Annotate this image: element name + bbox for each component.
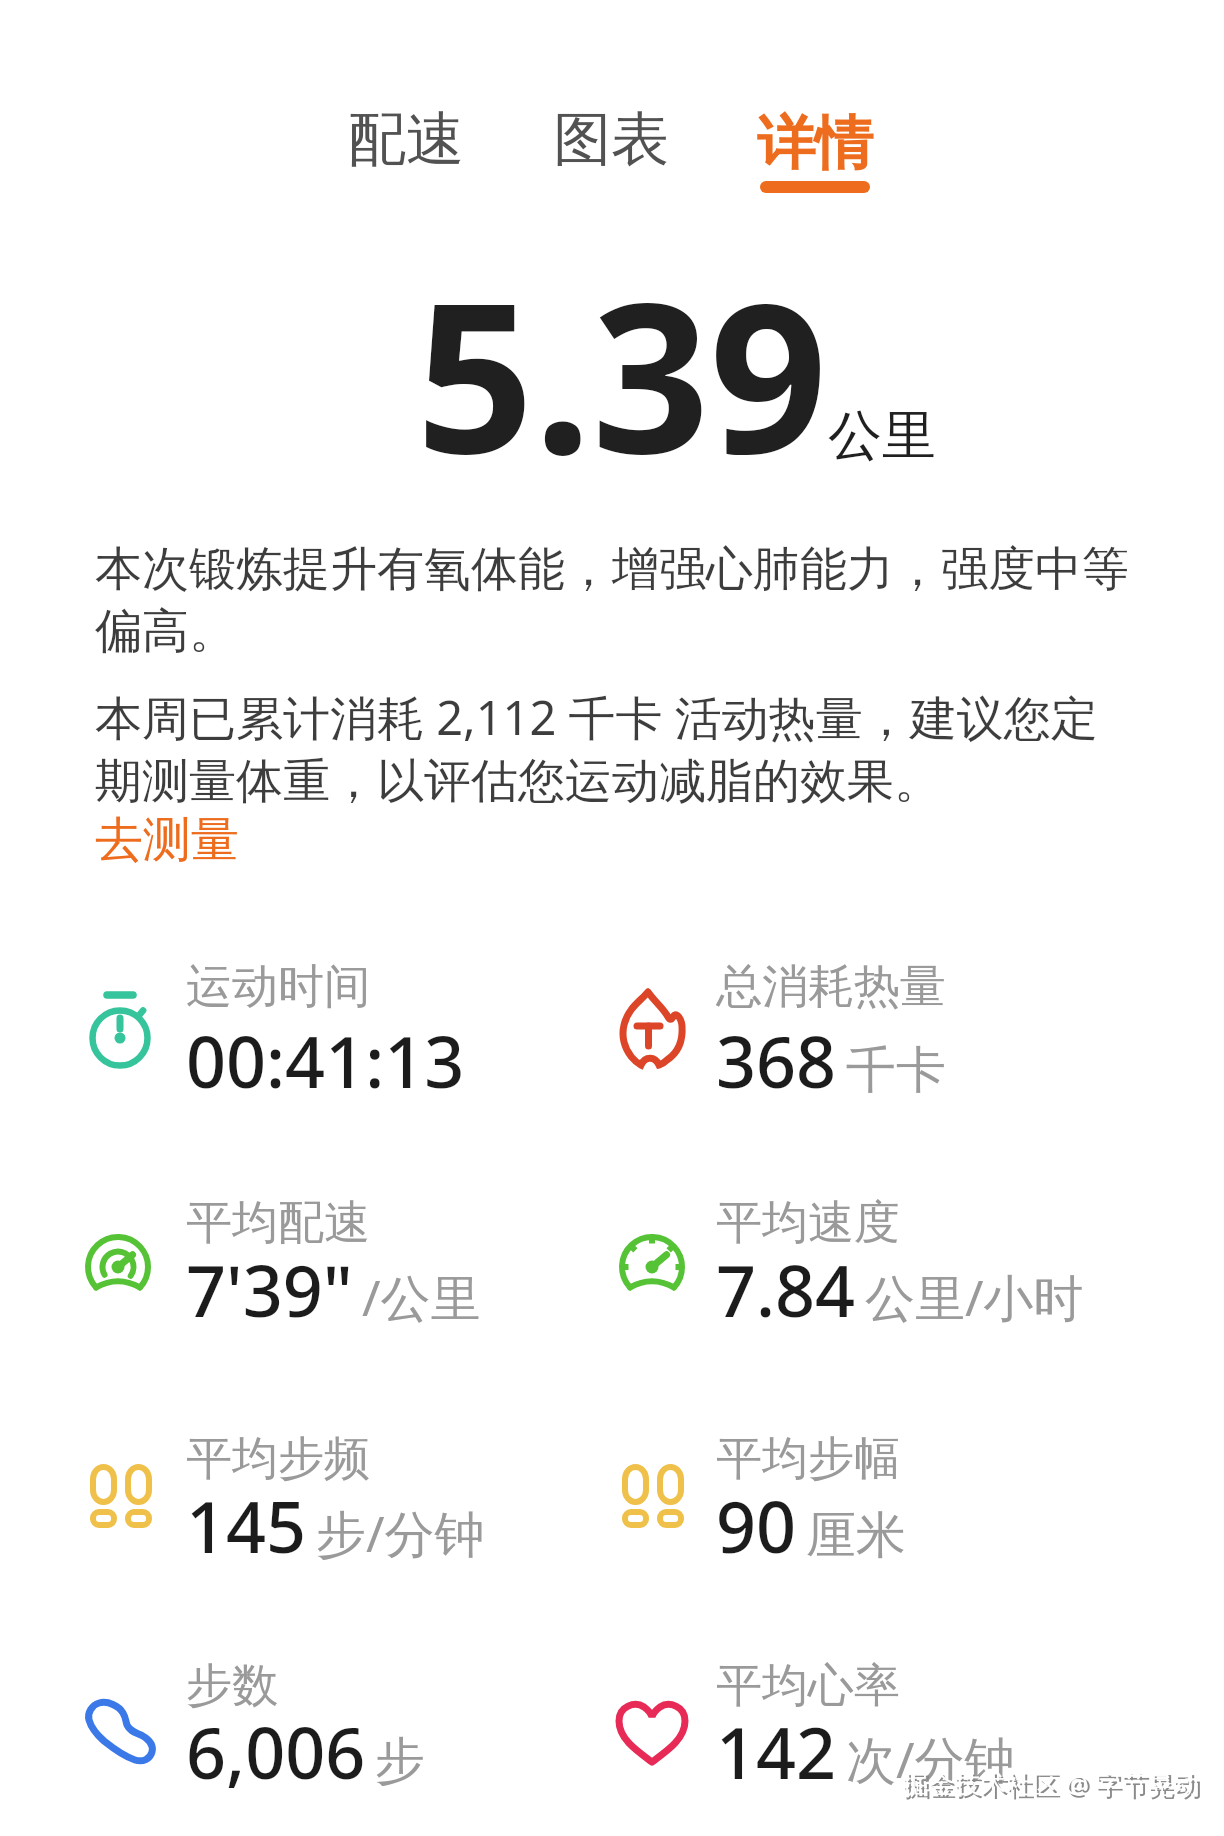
staticText: 本次锻炼提升有氧体能，增强心肺能力，强度中等 偏高。 — [95, 540, 1129, 661]
staticText: /公里 — [362, 1263, 481, 1331]
staticText: 7'39" — [186, 1242, 353, 1337]
staticText: 详情 — [757, 107, 873, 180]
button[interactable] — [750, 95, 875, 200]
staticText: 千卡 — [846, 1039, 946, 1102]
staticText: 142 — [716, 1704, 837, 1799]
staticText: 平均速度 — [716, 1194, 900, 1252]
staticText: 本周已累计消耗 2,112 千卡 活动热量，建议您定 期测量体重，以评估您运动减… — [95, 685, 1098, 811]
staticText: 掘金技术社区 @ 字节晃动 — [902, 1765, 1199, 1801]
staticText: 步数 — [186, 1657, 278, 1715]
staticText: 368 — [716, 1013, 837, 1108]
staticText: 7.84 — [716, 1242, 856, 1337]
staticText: 平均心率 — [716, 1657, 900, 1715]
staticText: 次/分钟 — [846, 1725, 1015, 1793]
staticText: 5.39 — [416, 233, 828, 514]
staticText: 公里/小时 — [865, 1263, 1084, 1331]
staticText: 总消耗热量 — [716, 958, 946, 1016]
staticText: 步/分钟 — [316, 1499, 485, 1567]
staticText: 平均步频 — [186, 1430, 370, 1488]
staticText: 90 — [716, 1478, 797, 1573]
staticText: 掘金技术社区 @ 字节晃动 — [905, 1768, 1202, 1804]
staticText: 平均步幅 — [716, 1430, 900, 1488]
staticText: 平均配速 — [186, 1194, 370, 1252]
button[interactable]: 配速 — [348, 103, 464, 176]
button[interactable]: 图表 — [553, 103, 669, 176]
staticText: 00:41:13 — [186, 1013, 465, 1108]
staticText: 运动时间 — [186, 958, 370, 1016]
button[interactable]: 去测量 — [95, 810, 239, 870]
staticText: 145 — [186, 1478, 307, 1573]
staticText: 厘米 — [806, 1504, 906, 1567]
staticText: 步 — [375, 1730, 425, 1793]
staticText: 6,006 — [186, 1704, 366, 1799]
staticText: 公里 — [828, 402, 936, 470]
